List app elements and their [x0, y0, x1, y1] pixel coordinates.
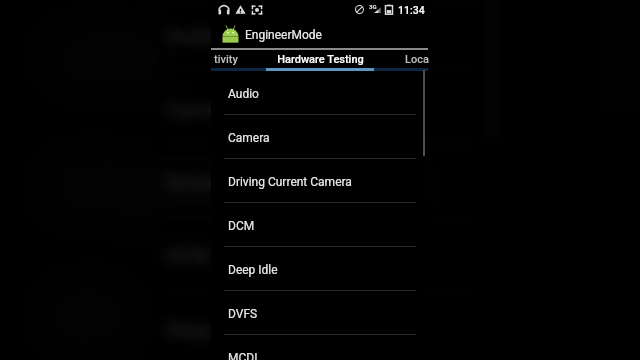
staticText: 11:34	[398, 4, 425, 16]
staticText: Driving Current Camera	[49, 165, 414, 207]
button[interactable]: Driving Current Camera	[0, 118, 639, 248]
button[interactable]: Driving Current Camera	[211, 159, 428, 203]
staticText: Deep Idle	[228, 263, 278, 277]
button[interactable]: DVFS	[211, 291, 428, 335]
staticText: Audio	[166, 25, 218, 48]
staticText: DCM	[228, 219, 255, 233]
button[interactable]: Hardware Testing	[266, 50, 374, 68]
staticText: Audio	[228, 87, 259, 101]
staticText: Camera	[166, 98, 236, 122]
button[interactable]: Camera	[138, 71, 500, 145]
button[interactable]: Deep Idle	[138, 292, 500, 360]
button[interactable]: Loca	[405, 50, 445, 68]
staticText: Deep Idle	[166, 319, 250, 342]
button[interactable]: DCM	[211, 203, 428, 247]
staticText: Hardware Testing	[277, 53, 364, 66]
button[interactable]: DCM	[0, 248, 639, 360]
button[interactable]: Audio	[211, 71, 428, 115]
staticText: Camera	[228, 131, 270, 145]
button[interactable]: Driving Current Camera	[138, 145, 500, 218]
staticText: Loca	[405, 53, 429, 66]
staticText: tivity	[214, 53, 238, 66]
button[interactable]: tivity	[183, 50, 238, 68]
button[interactable]: Deep Idle	[211, 247, 428, 291]
button[interactable]: DCM	[138, 218, 500, 292]
staticText: MCDI	[228, 351, 258, 360]
button[interactable]: Camera	[211, 115, 428, 159]
staticText: Driving Current Camera	[166, 172, 373, 195]
button[interactable]: Camera	[0, 0, 639, 118]
staticText: DVFS	[228, 307, 258, 321]
button[interactable]: App icon	[211, 21, 428, 48]
other: App icon	[222, 25, 239, 43]
staticText: 3G	[369, 3, 377, 10]
button[interactable]: MCDI	[211, 335, 428, 360]
staticText: Driving Current Camera	[228, 175, 352, 189]
staticText: EngineerMode	[245, 28, 322, 42]
button[interactable]: Audio	[138, 0, 500, 71]
